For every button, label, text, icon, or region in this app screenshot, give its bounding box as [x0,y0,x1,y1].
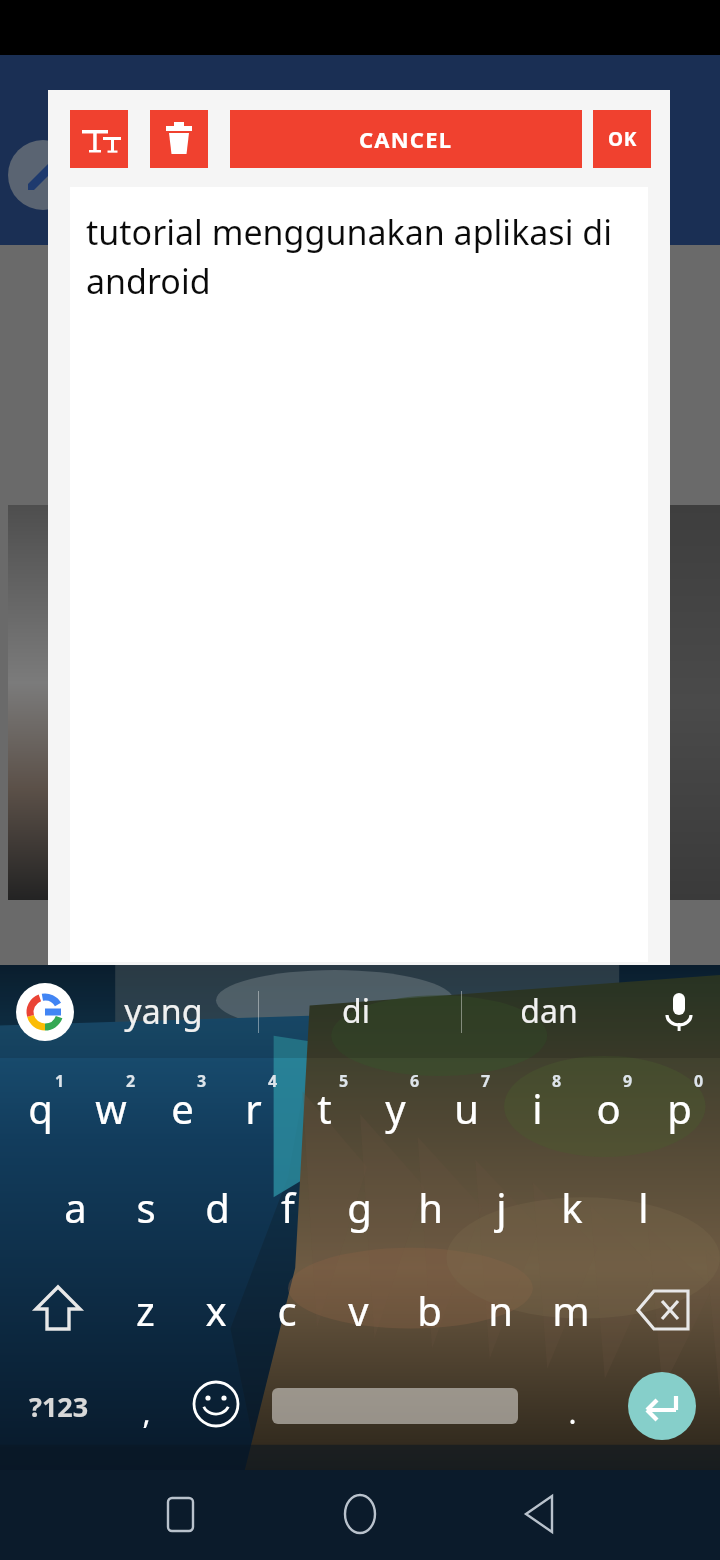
button[interactable]: w [76,1073,146,1143]
button[interactable]: Emoji [190,1378,242,1430]
button[interactable]: dan [459,980,639,1042]
staticText: dan [520,989,578,1033]
staticText: g [347,1180,372,1234]
staticText: 9 [623,1070,633,1092]
staticText: y [385,1081,406,1135]
button[interactable]: r [218,1073,288,1143]
button[interactable]: a [40,1172,110,1242]
button[interactable]: z [110,1275,180,1345]
staticText: u [454,1081,479,1135]
staticText: 1 [55,1070,65,1092]
staticText: OK [608,126,637,152]
button[interactable]: OK [593,110,651,168]
button[interactable]: Text size [70,110,128,168]
button[interactable]: u [431,1073,501,1143]
button[interactable]: g [324,1172,394,1242]
button[interactable]: ?123 [14,1375,104,1437]
button[interactable]: o [573,1073,643,1143]
button[interactable]: di [266,980,446,1042]
staticText: e [171,1081,194,1135]
button[interactable]: c [252,1275,322,1345]
staticText: 7 [481,1070,491,1092]
staticText: CANCEL [359,124,453,154]
staticText: 5 [339,1070,349,1092]
staticText: 4 [268,1070,278,1092]
staticText: 2 [126,1070,136,1092]
staticText: l [638,1180,649,1234]
staticText: o [596,1081,621,1135]
button[interactable]: Back [510,1485,570,1545]
staticText: v [348,1283,369,1337]
staticText: z [136,1283,155,1337]
button[interactable]: . [537,1377,607,1447]
button[interactable]: l [608,1172,678,1242]
staticText: a [64,1180,87,1234]
button[interactable]: v [323,1275,393,1345]
staticText: d [205,1180,230,1234]
button[interactable]: n [465,1275,535,1345]
button[interactable]: x [181,1275,251,1345]
staticText: x [205,1283,227,1337]
button[interactable]: CANCEL [230,110,582,168]
button[interactable]: Edit [8,140,78,210]
staticText: r [245,1081,262,1135]
staticText: t [317,1081,332,1135]
staticText: 3 [197,1070,207,1092]
staticText: f [281,1180,295,1234]
staticText: p [667,1081,692,1135]
staticText: 6 [410,1070,420,1092]
button[interactable]: t [289,1073,359,1143]
button[interactable]: y [360,1073,430,1143]
staticText: 0 [694,1070,704,1092]
button[interactable]: m [536,1275,606,1345]
staticText: yang [124,988,203,1034]
staticText: 8 [552,1070,562,1092]
staticText: h [418,1180,443,1234]
button[interactable]: Delete [150,110,208,168]
staticText: j [496,1180,507,1234]
button[interactable]: tutorial menggunakan aplikasi di android [70,187,648,962]
staticText: n [488,1283,513,1337]
staticText: ?123 [29,1388,89,1425]
button[interactable]: e [147,1073,217,1143]
staticText: s [136,1180,156,1234]
staticText: , [142,1392,151,1433]
button[interactable]: d [182,1172,252,1242]
staticText: i [532,1081,543,1135]
button[interactable]: Google [16,983,74,1041]
button[interactable]: q [5,1073,75,1143]
staticText: tutorial menggunakan aplikasi di android [86,209,632,329]
button[interactable]: Shift [26,1275,90,1345]
button[interactable]: b [394,1275,464,1345]
button[interactable]: Backspace [630,1275,696,1345]
staticText: m [552,1283,590,1337]
staticText: . [568,1392,577,1433]
button[interactable]: s [111,1172,181,1242]
button[interactable]: j [466,1172,536,1242]
button[interactable]: f [253,1172,323,1242]
staticText: k [561,1180,583,1234]
button[interactable]: Enter [628,1372,696,1440]
button[interactable]: Home [330,1485,390,1545]
button[interactable]: , [111,1377,181,1447]
button[interactable]: Voice input [652,985,706,1039]
staticText: q [28,1081,53,1135]
staticText: c [277,1283,297,1337]
button[interactable]: yang [73,980,253,1042]
button[interactable]: k [537,1172,607,1242]
button[interactable]: Space [272,1388,518,1424]
staticText: b [417,1283,442,1337]
button[interactable]: Recents [150,1485,210,1545]
staticText: w [95,1081,127,1135]
button[interactable]: h [395,1172,465,1242]
staticText: di [342,989,370,1033]
button[interactable]: p [644,1073,714,1143]
button[interactable]: i [502,1073,572,1143]
